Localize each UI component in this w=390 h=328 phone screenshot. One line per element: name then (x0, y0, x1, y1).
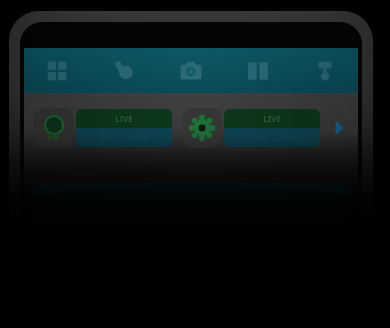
button[interactable]: LIVE (182, 106, 320, 150)
button[interactable]: Sports (90, 48, 157, 93)
button[interactable]: Camera (157, 48, 224, 93)
staticText: LIVE (115, 113, 133, 124)
staticText: LIVE (263, 113, 281, 124)
staticText: Match update (246, 132, 299, 143)
button[interactable]: Awards (291, 48, 358, 93)
button[interactable]: News (224, 48, 291, 93)
button[interactable]: LIVE (34, 106, 172, 150)
button[interactable]: More (326, 115, 352, 141)
button[interactable]: Apps (24, 48, 90, 93)
button[interactable] (32, 182, 350, 302)
staticText: Match update (98, 132, 151, 143)
